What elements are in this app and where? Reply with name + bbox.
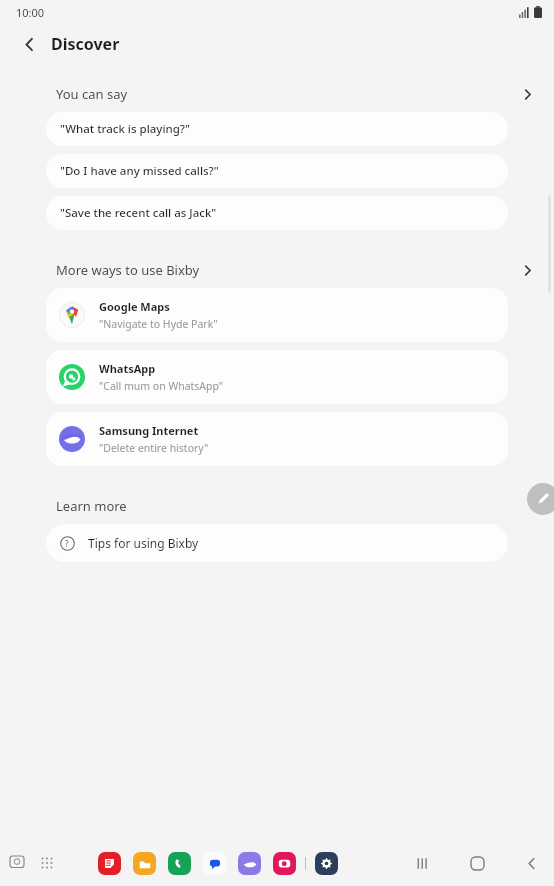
staticText: Samsung Internet xyxy=(99,423,199,438)
button[interactable]: More ways to use Bixby xyxy=(0,252,554,288)
button[interactable]: You can say xyxy=(0,76,554,112)
button[interactable] xyxy=(238,852,261,875)
button[interactable]: Google Maps xyxy=(46,288,508,342)
staticText: Learn more xyxy=(56,497,127,515)
staticText: Discover xyxy=(51,33,120,55)
staticText: WhatsApp xyxy=(99,361,156,376)
staticText: "Do I have any missed calls?" xyxy=(60,163,219,179)
staticText: "Call mum on WhatsApp" xyxy=(99,379,224,393)
button[interactable]: Apps xyxy=(34,850,60,876)
staticText: ? xyxy=(65,538,69,549)
button[interactable]: Back xyxy=(514,846,548,880)
button[interactable]: Samsung Internet xyxy=(46,412,508,466)
button[interactable]: "Do I have any missed calls?" xyxy=(46,154,508,188)
button[interactable]: WhatsApp xyxy=(46,350,508,404)
button[interactable]: ? xyxy=(46,524,508,562)
button[interactable]: Back xyxy=(14,29,44,59)
button[interactable]: Home xyxy=(460,846,494,880)
button[interactable]: Recents xyxy=(406,846,440,880)
button[interactable] xyxy=(168,852,191,875)
button[interactable] xyxy=(273,852,296,875)
button[interactable] xyxy=(203,852,226,875)
staticText: Google Maps xyxy=(99,299,170,314)
button[interactable]: "What track is playing?" xyxy=(46,112,508,146)
button[interactable] xyxy=(315,852,338,875)
staticText: You can say xyxy=(56,85,128,103)
staticText: "Save the recent call as Jack" xyxy=(60,205,217,221)
staticText: "What track is playing?" xyxy=(60,121,190,137)
staticText: "Navigate to Hyde Park" xyxy=(99,317,218,331)
staticText: Tips for using Bixby xyxy=(88,535,199,551)
staticText: 10:00 xyxy=(16,5,45,20)
staticText: "Delete entire history" xyxy=(99,441,209,455)
staticText: More ways to use Bixby xyxy=(56,261,200,279)
button[interactable]: Taskbar xyxy=(4,850,30,876)
button[interactable] xyxy=(98,852,121,875)
button[interactable]: "Save the recent call as Jack" xyxy=(46,196,508,230)
button[interactable]: Edit xyxy=(527,483,554,515)
button[interactable] xyxy=(133,852,156,875)
